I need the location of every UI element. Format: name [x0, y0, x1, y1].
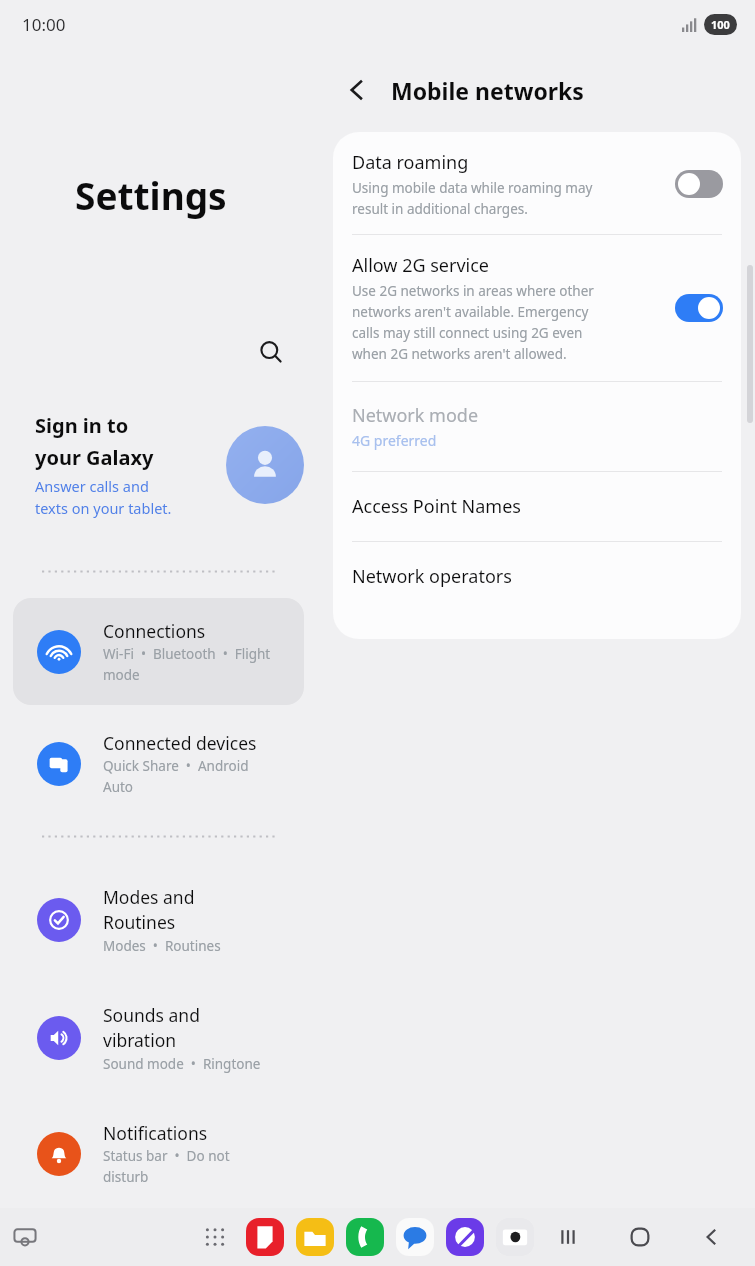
- button[interactable]: App: [446, 1218, 484, 1256]
- button[interactable]: Connections: [13, 598, 304, 705]
- button[interactable]: Home: [615, 1212, 665, 1262]
- staticText: 100: [711, 17, 730, 32]
- button[interactable]: Sign in to your Galaxy: [35, 412, 304, 518]
- staticText: Using mobile data while roaming may resu…: [352, 179, 593, 218]
- button[interactable]: Off: [675, 170, 723, 198]
- staticText: 4G preferred: [352, 431, 437, 450]
- button[interactable]: Search: [248, 329, 294, 375]
- staticText: Wi-Fi • Bluetooth • Flight mode: [103, 645, 271, 684]
- button[interactable]: Network mode: [333, 382, 741, 471]
- staticText: Modes and Routines: [103, 885, 195, 935]
- button[interactable]: Sounds and vibration: [13, 982, 304, 1094]
- button[interactable]: App: [296, 1218, 334, 1256]
- button[interactable]: Access Point Names: [333, 472, 741, 541]
- staticText: Connected devices: [103, 731, 257, 755]
- button[interactable]: Data roaming: [333, 132, 741, 234]
- button[interactable]: Apps: [194, 1216, 236, 1258]
- button[interactable]: Recents: [543, 1212, 593, 1262]
- button[interactable]: Allow 2G service: [333, 235, 741, 381]
- button[interactable]: On: [675, 294, 723, 322]
- staticText: Modes • Routines: [103, 937, 221, 955]
- staticText: 10:00: [22, 13, 66, 36]
- staticText: Use 2G networks in areas where other net…: [352, 282, 594, 363]
- staticText: Answer calls and texts on your tablet.: [35, 476, 172, 518]
- button[interactable]: App: [246, 1218, 284, 1256]
- button[interactable]: Modes and Routines: [13, 864, 304, 976]
- staticText: Network operators: [352, 564, 512, 589]
- staticText: Data roaming: [352, 150, 469, 175]
- staticText: Settings: [75, 170, 227, 220]
- button[interactable]: Back: [333, 66, 381, 114]
- staticText: Allow 2G service: [352, 253, 490, 278]
- button[interactable]: Network operators: [333, 542, 741, 611]
- staticText: Access Point Names: [352, 494, 521, 519]
- button[interactable]: App: [496, 1218, 534, 1256]
- staticText: Connections: [103, 619, 206, 643]
- staticText: Sounds and vibration: [103, 1003, 200, 1053]
- staticText: Notifications: [103, 1121, 208, 1145]
- button[interactable]: Connected devices: [13, 710, 304, 817]
- button[interactable]: Back: [687, 1212, 737, 1262]
- button[interactable]: App: [396, 1218, 434, 1256]
- staticText: Quick Share • Android Auto: [103, 757, 249, 796]
- button[interactable]: Notifications: [13, 1100, 304, 1207]
- button[interactable]: Recent apps: [5, 1217, 45, 1257]
- staticText: Sound mode • Ringtone: [103, 1055, 261, 1073]
- staticText: Mobile networks: [391, 75, 584, 106]
- staticText: Network mode: [352, 403, 479, 428]
- staticText: Status bar • Do not disturb: [103, 1147, 230, 1186]
- button[interactable]: App: [346, 1218, 384, 1256]
- staticText: Sign in to your Galaxy: [35, 412, 154, 471]
